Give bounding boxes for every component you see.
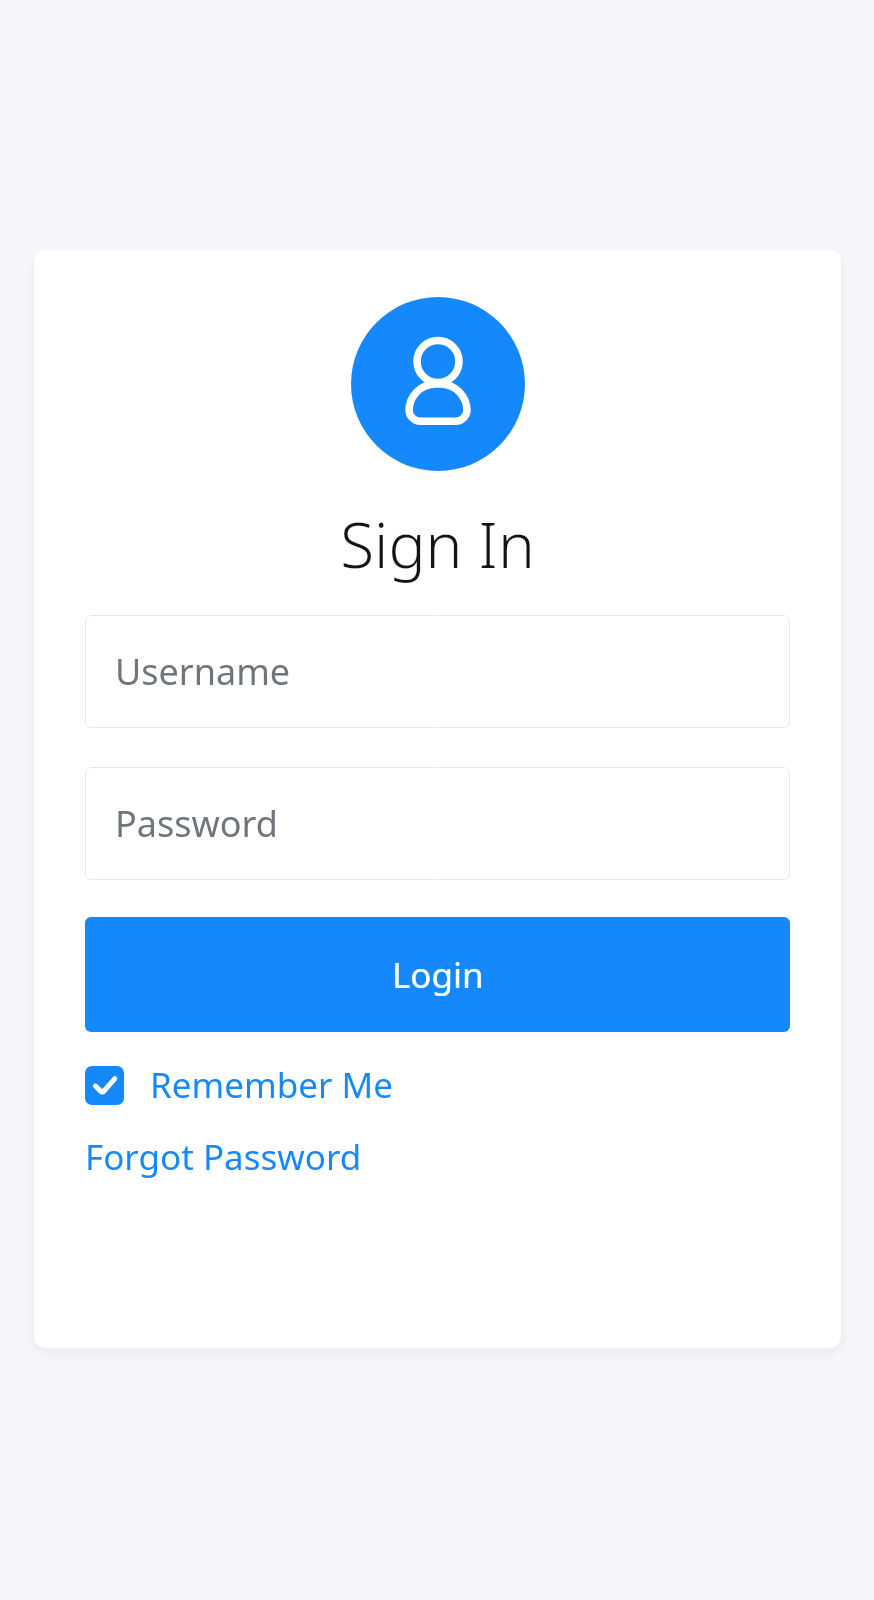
staticText: Remember Me <box>150 1061 394 1109</box>
button[interactable]: Remember Me <box>85 1059 394 1111</box>
other: User avatar <box>351 297 525 471</box>
staticText: Sign In <box>34 502 841 586</box>
staticText: Forgot Password <box>85 1133 362 1181</box>
button[interactable]: Username <box>85 615 790 728</box>
button[interactable]: Forgot Password <box>85 1133 362 1181</box>
staticText: Username <box>115 647 291 696</box>
button[interactable]: Login <box>85 917 790 1032</box>
staticText: Password <box>115 799 278 848</box>
button[interactable]: Password <box>85 767 790 880</box>
staticText: Login <box>392 951 484 999</box>
